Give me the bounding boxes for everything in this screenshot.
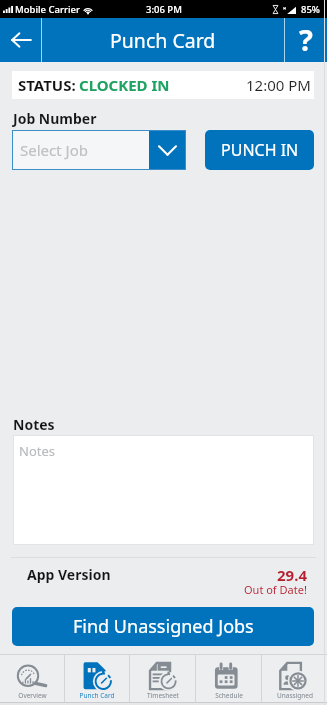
button[interactable]: Select Job [12,130,186,170]
staticText: Mobile Carrier [15,3,81,16]
staticText: Find Unassigned Jobs [73,614,254,639]
staticText: Out of Date! [244,582,307,597]
button[interactable]: Timesheet [130,655,195,702]
staticText: 29.4 [277,565,307,585]
staticText: STATUS: [18,75,76,95]
staticText: 12:00 PM [246,75,311,95]
staticText: Job Number [13,109,97,128]
staticText: App Version [27,565,111,584]
staticText: Punch Card [110,27,216,54]
staticText: CLOCKED IN [79,75,170,95]
button[interactable]: Unassigned [262,655,327,702]
staticText: Select Job [20,140,88,160]
button[interactable]: Schedule [196,655,261,702]
staticText: Overview [18,691,47,700]
staticText: 85% [301,3,320,16]
button[interactable]: Punch Card [65,655,129,702]
button[interactable]: Find Unassigned Jobs [12,607,314,646]
staticText: Unassigned [277,691,313,700]
staticText: Notes [19,442,55,460]
button[interactable]: Back [0,18,41,62]
button[interactable]: PUNCH IN [205,130,314,170]
staticText: Punch Card [79,691,115,700]
button[interactable]: Notes field [13,435,314,545]
staticText: Schedule [215,691,243,700]
button[interactable]: Overview [0,655,64,702]
staticText: Timesheet [147,691,179,700]
staticText: Notes [13,415,55,434]
staticText: 3:06 PM [146,3,182,16]
staticText: PUNCH IN [221,139,299,161]
button[interactable]: Help [285,18,327,62]
staticText: ? [299,20,313,59]
